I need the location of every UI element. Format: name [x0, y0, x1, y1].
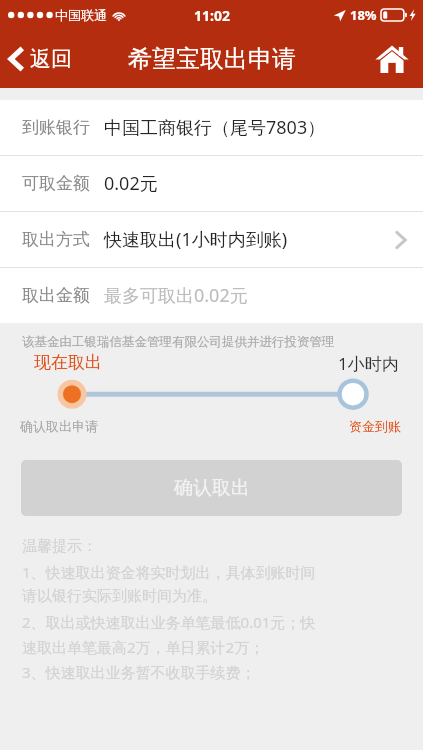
staticText: 18%	[350, 6, 377, 24]
staticText: 取出金额	[22, 285, 90, 306]
staticText: 11:02	[194, 6, 230, 25]
staticText: 资金到账	[349, 418, 401, 434]
staticText: 取出方式	[22, 229, 90, 250]
staticText: 3、快速取出业务暂不收取手续费；	[22, 662, 256, 682]
button[interactable]: 可取金额	[0, 156, 423, 211]
staticText: 确认取出	[174, 476, 250, 500]
staticText: 中国工商银行（尾号7803）	[104, 115, 326, 140]
staticText: 现在取出	[34, 352, 102, 373]
button[interactable]: 取出方式	[0, 212, 423, 267]
staticText: 确认取出申请	[20, 418, 98, 434]
button[interactable]: 取出金额	[0, 268, 423, 323]
staticText: 1小时内	[338, 352, 399, 375]
staticText: 希望宝取出申请	[128, 44, 296, 74]
staticText: 最多可取出0.02元	[104, 283, 248, 308]
button[interactable]: 返回	[0, 40, 82, 78]
staticText: 到账银行	[22, 117, 90, 138]
staticText: 返回	[30, 46, 72, 72]
staticText: 0.02元	[104, 171, 158, 196]
button[interactable]: 到账银行	[0, 100, 423, 155]
staticText: 2、取出或快速取出业务单笔最低0.01元；快	[22, 612, 316, 632]
staticText: 温馨提示：	[22, 537, 97, 556]
staticText: 该基金由工银瑞信基金管理有限公司提供并进行投资管理	[22, 334, 335, 350]
staticText: 1、快速取出资金将实时划出，具体到账时间	[22, 562, 316, 582]
staticText: 速取出单笔最高2万，单日累计2万；	[22, 637, 265, 657]
button[interactable]: 确认取出	[21, 460, 402, 516]
staticText: 快速取出(1小时内到账)	[104, 227, 288, 252]
staticText: 请以银行实际到账时间为准。	[22, 587, 217, 606]
button[interactable]: Home	[361, 34, 423, 84]
staticText: 可取金额	[22, 173, 90, 194]
staticText: 中国联通	[55, 7, 107, 23]
